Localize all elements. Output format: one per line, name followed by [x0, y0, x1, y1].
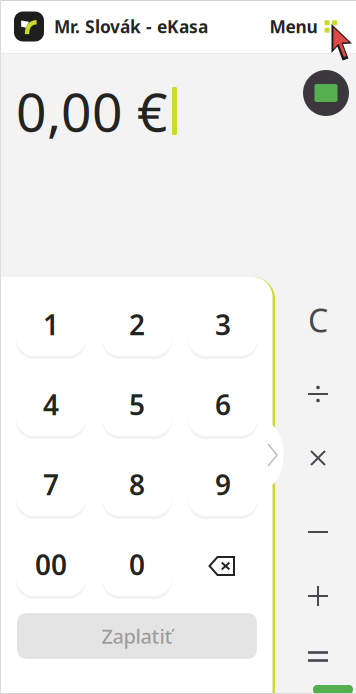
button[interactable]: 0	[102, 533, 172, 599]
button[interactable]: 8	[102, 453, 172, 519]
staticText: 00	[35, 546, 67, 583]
button[interactable]: 4	[16, 373, 86, 439]
staticText: 2	[129, 306, 145, 343]
staticText: 9	[215, 466, 231, 503]
staticText: C	[308, 299, 328, 341]
button[interactable]: 3	[188, 293, 258, 359]
button[interactable]: Plus	[285, 569, 351, 623]
button[interactable]: 7	[16, 453, 86, 519]
button[interactable]: Mr. Slovák - eKasa	[0, 1, 208, 51]
staticText: 8	[129, 466, 145, 503]
button[interactable]: Expand keypad	[258, 424, 288, 486]
staticText: Zaplatiť	[101, 623, 172, 649]
button[interactable]: Multiply	[285, 431, 351, 485]
staticText: 5	[129, 386, 145, 423]
button[interactable]: Profile	[303, 70, 349, 116]
staticText: 0	[129, 546, 145, 583]
button[interactable]: 2	[102, 293, 172, 359]
staticText: 0,00 €	[16, 76, 168, 146]
button[interactable]: Divide	[285, 367, 351, 421]
button[interactable]: Minus	[285, 505, 351, 559]
button[interactable]: Clear	[285, 293, 351, 347]
staticText: 7	[43, 466, 59, 503]
staticText: 4	[43, 386, 59, 423]
button[interactable]: 6	[188, 373, 258, 439]
staticText: 3	[215, 306, 231, 343]
button[interactable]: Equals	[285, 629, 351, 683]
button[interactable]: 00	[16, 533, 86, 599]
button[interactable]: Delete	[188, 533, 258, 599]
button[interactable]: Menu	[269, 3, 356, 50]
staticText: Mr. Slovák - eKasa	[54, 15, 208, 38]
button[interactable]: 1	[16, 293, 86, 359]
button[interactable]: 5	[102, 373, 172, 439]
button[interactable]: Zaplatiť	[17, 613, 257, 659]
staticText: 6	[215, 386, 231, 423]
button[interactable]: 9	[188, 453, 258, 519]
staticText: 1	[43, 306, 59, 343]
staticText: Menu	[269, 15, 317, 38]
